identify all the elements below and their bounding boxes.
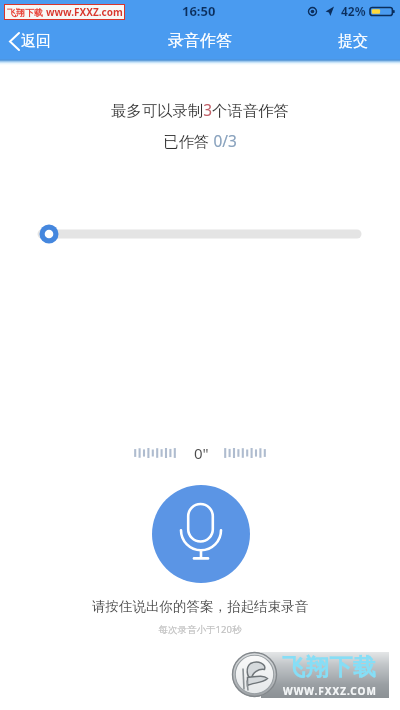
staticText: 提交 [338,32,368,51]
staticText: 每次录音小于120秒 [0,623,400,636]
staticText: 录音作答 [168,31,232,51]
staticText: WWW.FXXZ.COM [283,684,377,698]
button[interactable]: 提交 [324,26,400,57]
staticText: 返回 [21,32,51,51]
staticText: 请按住说出你的答案，抬起结束录音 [0,598,400,615]
staticText: 飞翔下载 [282,653,377,682]
staticText: www.FXXZ.com [46,5,123,19]
staticText: 飞翔下载 [7,7,43,18]
staticText: 已作答 0/3 [0,131,400,152]
staticText: 42% [341,3,366,19]
button[interactable]: Hold to record [152,485,250,583]
button[interactable]: 返回 [0,26,61,57]
staticText: 最多可以录制3个语音作答 [0,100,400,121]
staticText: 16:50 [182,2,216,20]
staticText: 0" [194,443,209,463]
